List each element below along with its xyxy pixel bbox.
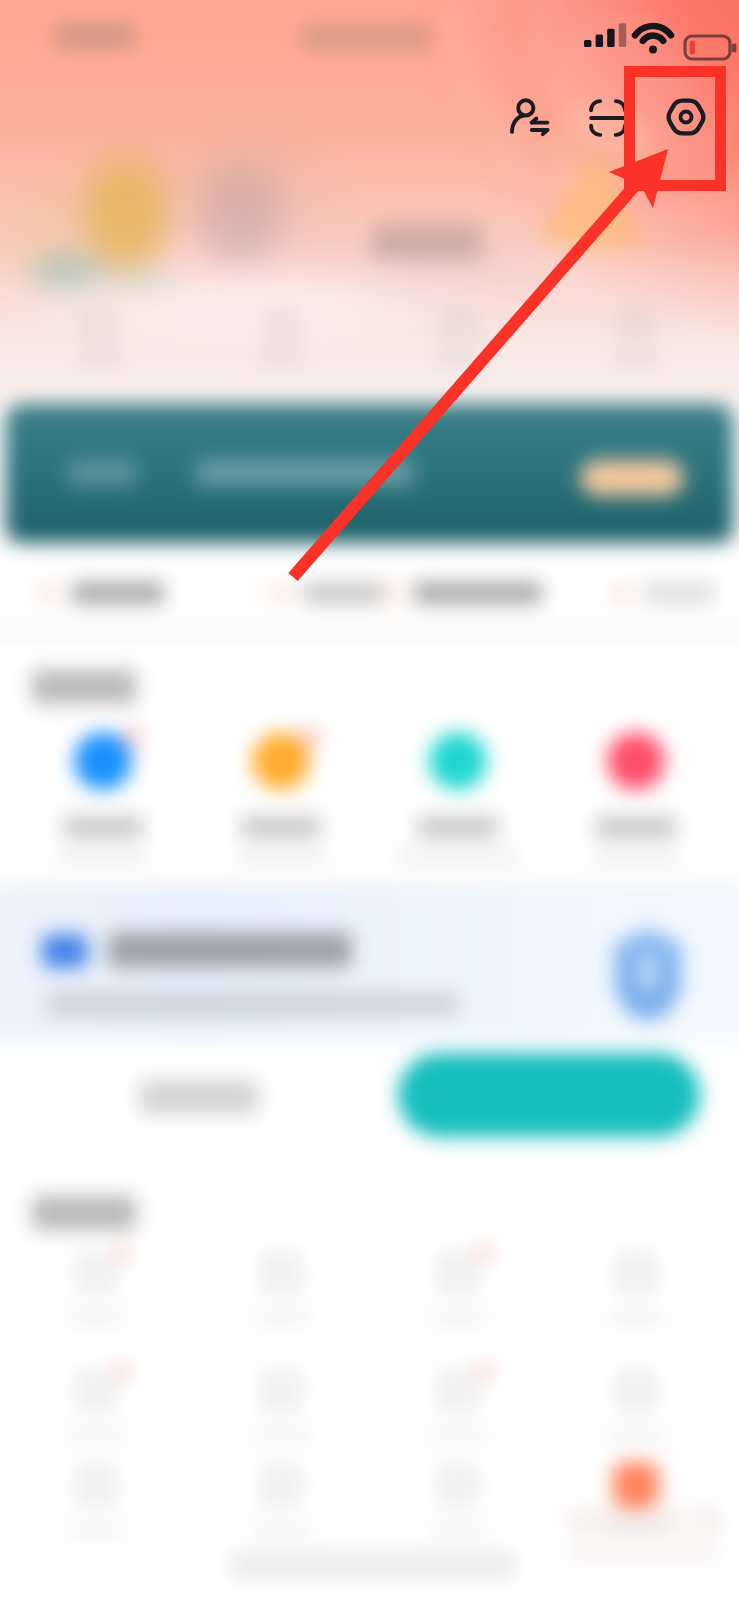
button[interactable] — [576, 1368, 696, 1443]
button[interactable] — [576, 1250, 696, 1325]
button[interactable] — [566, 732, 706, 864]
button[interactable] — [221, 1368, 341, 1443]
button[interactable] — [221, 306, 341, 368]
button[interactable] — [36, 1462, 156, 1537]
button[interactable] — [398, 1250, 518, 1325]
button[interactable] — [140, 1080, 258, 1114]
button[interactable]: Scan — [578, 88, 638, 148]
button[interactable] — [221, 1462, 341, 1537]
button[interactable] — [388, 732, 528, 864]
button[interactable] — [36, 1368, 156, 1443]
button[interactable] — [0, 888, 739, 1040]
button[interactable] — [576, 1462, 696, 1537]
button[interactable] — [608, 580, 714, 606]
button[interactable] — [40, 306, 160, 368]
button[interactable] — [580, 460, 684, 496]
button[interactable] — [398, 1368, 518, 1443]
button[interactable] — [211, 732, 351, 864]
button[interactable] — [378, 580, 542, 606]
button[interactable] — [398, 1053, 700, 1137]
button[interactable] — [36, 580, 164, 606]
button[interactable] — [33, 732, 173, 864]
button[interactable] — [398, 1462, 518, 1537]
button[interactable]: Add friend — [499, 88, 559, 148]
button[interactable] — [398, 306, 518, 368]
button[interactable] — [576, 306, 696, 368]
button[interactable] — [6, 404, 733, 543]
button[interactable]: Settings — [656, 87, 716, 147]
button[interactable] — [268, 580, 382, 606]
button[interactable] — [36, 1250, 156, 1325]
button[interactable] — [221, 1250, 341, 1325]
